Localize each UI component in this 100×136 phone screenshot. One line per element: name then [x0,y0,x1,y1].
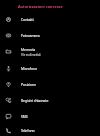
staticText: SMS [21,114,28,119]
button[interactable]: Telefono [0,124,100,136]
staticText: Memoria [21,47,36,52]
staticText: Telefono [21,128,35,133]
button[interactable]: Posizione [0,76,100,92]
staticText: Autorizzazioni concesse [18,4,63,9]
staticText: File multimediali [21,53,41,56]
button[interactable]: Memoria [0,43,100,60]
button[interactable]: Fotocamera [0,27,100,43]
staticText: Microfono [21,66,38,71]
staticText: Registri chiamate [21,98,49,103]
button[interactable]: Contatti [0,11,100,27]
staticText: Fotocamera [21,33,40,38]
button[interactable]: SMS [0,108,100,124]
staticText: Contatti [21,17,34,22]
staticText: Posizione [21,82,36,87]
button[interactable]: Microfono [0,60,100,76]
button[interactable]: Registri chiamate [0,92,100,108]
